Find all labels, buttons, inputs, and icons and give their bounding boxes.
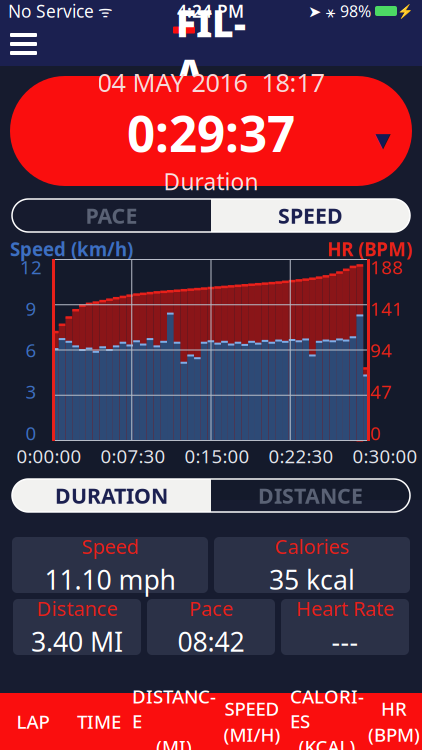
button[interactable]: HR <box>366 693 422 750</box>
button[interactable]: Menu <box>0 23 47 65</box>
staticText: FILA <box>176 0 246 97</box>
staticText: 47 <box>370 379 392 404</box>
button[interactable]: CALORIES <box>288 693 366 750</box>
staticText: Speed <box>81 533 138 560</box>
staticText: Distance <box>36 595 117 622</box>
staticText: 0 <box>370 421 381 445</box>
staticText: 0:15:00 <box>184 444 249 468</box>
staticText: 0:29:37 <box>127 100 295 165</box>
staticText: DISTANCE <box>258 481 363 510</box>
staticText: ᯤ <box>94 0 113 22</box>
staticText: 04 MAY 2016 18:17 <box>97 65 324 99</box>
button[interactable]: LAP <box>0 693 66 750</box>
staticText: ➤ ⚹ 98% <box>308 0 371 22</box>
staticText: ▼ <box>375 129 390 151</box>
button[interactable]: DISTANCE <box>132 693 216 750</box>
staticText: ⚡ <box>397 3 414 19</box>
staticText: Heart Rate <box>296 595 394 622</box>
button[interactable]: Calories <box>214 537 410 593</box>
staticText: 3.40 MI <box>31 624 123 659</box>
staticText: 94 <box>370 338 392 362</box>
staticText: (MI/H) <box>223 722 280 747</box>
staticText: DISTANCE <box>132 684 216 733</box>
staticText: SPEED <box>224 696 279 721</box>
button[interactable]: SPEED <box>216 693 288 750</box>
staticText: 11.10 mph <box>44 562 175 597</box>
button[interactable]: DURATION <box>12 479 211 512</box>
button[interactable]: Speed <box>12 537 208 593</box>
staticText: 0:30:00 <box>352 444 417 468</box>
button[interactable]: SPEED <box>211 199 410 232</box>
staticText: 35 kcal <box>269 562 355 597</box>
staticText: 6 <box>25 338 36 362</box>
staticText: 0:22:30 <box>268 444 333 468</box>
staticText: 3 <box>25 379 36 404</box>
staticText: 0:00:00 <box>16 444 81 468</box>
staticText: SPEED <box>278 201 343 230</box>
staticText: PACE <box>85 201 137 230</box>
staticText: 141 <box>370 296 403 321</box>
staticText: 0:07:30 <box>100 444 165 468</box>
staticText: 08:42 <box>177 624 244 659</box>
staticText: HR (BPM) <box>327 237 412 261</box>
staticText: Speed (km/h) <box>10 237 133 261</box>
button[interactable]: PACE <box>12 199 211 232</box>
staticText: DURATION <box>55 481 168 510</box>
button[interactable]: Distance <box>13 599 141 655</box>
button[interactable]: Heart Rate <box>281 599 409 655</box>
staticText: 9 <box>25 296 36 321</box>
staticText: 12 <box>20 255 42 279</box>
staticText: 188 <box>370 255 403 279</box>
staticText: CALORIES <box>290 684 364 733</box>
button[interactable]: 04 MAY 2016 18:17 <box>10 76 412 186</box>
staticText: (KCAL) <box>298 734 355 750</box>
staticText: No Service <box>8 0 94 22</box>
staticText: Duration <box>163 166 258 197</box>
staticText: LAP <box>16 709 49 734</box>
staticText: --- <box>331 624 358 659</box>
staticText: (BPM) <box>368 722 420 747</box>
staticText: HR <box>381 696 407 721</box>
staticText: TIME <box>77 709 121 734</box>
staticText: (MI) <box>156 734 192 750</box>
staticText: 0 <box>25 421 36 445</box>
staticText: Pace <box>189 595 233 622</box>
button[interactable]: TIME <box>66 693 132 750</box>
staticText: 4:24 PM <box>177 0 244 22</box>
button[interactable]: Pace <box>147 599 275 655</box>
staticText: Calories <box>274 533 349 560</box>
button[interactable]: DISTANCE <box>211 479 410 512</box>
